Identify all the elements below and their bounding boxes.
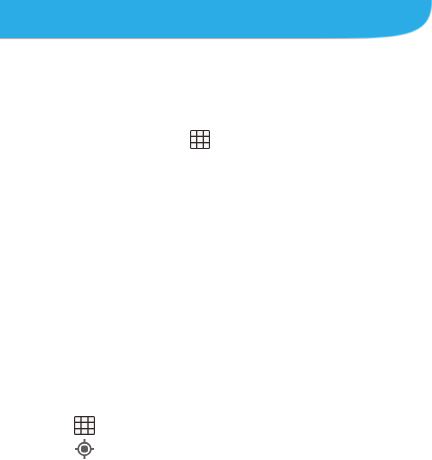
button[interactable]: Grid (190, 130, 210, 149)
button[interactable]: Grid view (74, 416, 95, 435)
button[interactable]: Top app bar (0, 0, 432, 38)
button[interactable]: My location (75, 439, 94, 459)
